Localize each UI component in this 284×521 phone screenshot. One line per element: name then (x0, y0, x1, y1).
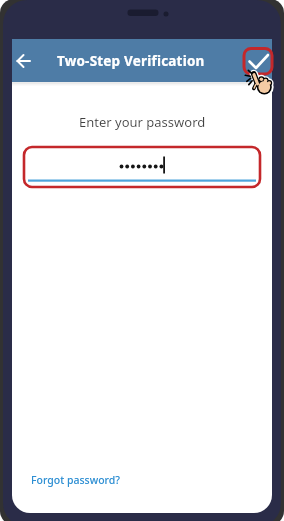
button[interactable]: Forgot password? (28, 470, 118, 484)
staticText: Enter your password (79, 113, 206, 131)
button[interactable] (240, 45, 272, 77)
button[interactable] (12, 43, 48, 79)
staticText: Two-Step Verification (57, 52, 205, 70)
button[interactable] (24, 147, 260, 187)
staticText: Forgot password? (31, 473, 121, 487)
